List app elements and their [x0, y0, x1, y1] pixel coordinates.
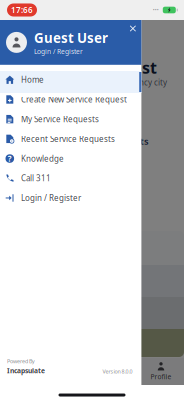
button[interactable]: Login / Register: [0, 188, 141, 208]
staticText: Login / Register: [34, 47, 83, 56]
staticText: 17:66: [11, 5, 33, 15]
staticText: Recent Service Requests: [21, 133, 115, 144]
staticText: Emergency city: [110, 77, 167, 88]
button[interactable]: Home: [0, 70, 141, 90]
staticText: Announcements: [74, 135, 149, 147]
staticText: Create New Service Request: [21, 94, 127, 105]
button[interactable]: Create New Service Request: [0, 90, 141, 109]
staticText: Profile: [150, 372, 171, 381]
button[interactable]: Recent Service Requests: [0, 129, 141, 149]
staticText: Home: [21, 74, 44, 85]
staticText: •••: [153, 6, 159, 14]
button[interactable]: Profile: [138, 358, 184, 385]
staticText: Incapsulate: [7, 366, 45, 375]
staticText: Knowledge: [21, 153, 64, 164]
staticText: Powered By: [7, 358, 35, 365]
staticText: Guest User: [34, 29, 108, 47]
button[interactable]: ?: [0, 149, 141, 168]
staticText: Version 8.0.0: [102, 368, 132, 375]
staticText: My Service Requests: [21, 114, 99, 124]
staticText: ?: [8, 153, 12, 164]
button[interactable]: Call 311: [0, 168, 141, 188]
staticText: Call 311: [21, 173, 51, 183]
button[interactable]: Close menu: [124, 20, 141, 37]
button[interactable]: My Service Requests: [0, 109, 141, 129]
staticText: Login / Register: [21, 193, 81, 203]
staticText: Guest: [110, 57, 157, 78]
